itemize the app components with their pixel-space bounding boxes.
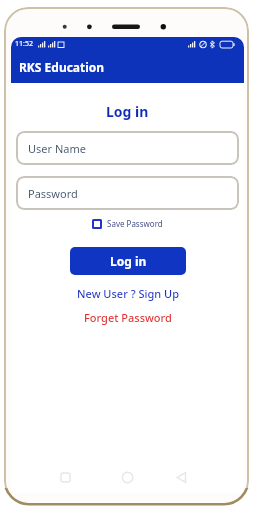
staticText: RKS Education bbox=[19, 59, 105, 75]
staticText: 11:52 bbox=[15, 39, 33, 49]
staticText: User Name bbox=[28, 141, 86, 156]
button[interactable]: New User ? Sign Up bbox=[77, 286, 179, 301]
staticText: Password bbox=[28, 186, 78, 201]
staticText: Forget Password bbox=[84, 310, 172, 325]
staticText: Log in bbox=[106, 102, 149, 121]
button[interactable]: Log in bbox=[70, 247, 186, 275]
staticText: Save Password bbox=[107, 218, 163, 229]
staticText: New User ? Sign Up bbox=[77, 286, 179, 301]
button[interactable]: Password bbox=[16, 176, 239, 210]
staticText: Log in bbox=[110, 253, 147, 269]
button[interactable]: Forget Password bbox=[84, 310, 172, 325]
button[interactable]: User Name bbox=[16, 131, 239, 165]
button[interactable]: Save Password bbox=[11, 218, 244, 229]
